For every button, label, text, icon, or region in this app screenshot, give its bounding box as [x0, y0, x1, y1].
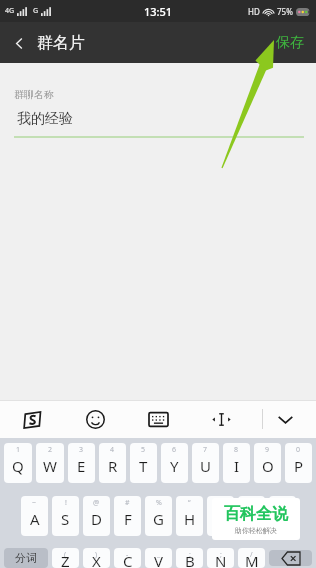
button[interactable]: 9 [254, 443, 281, 483]
button[interactable]: “ [176, 496, 203, 536]
staticText: ) [95, 550, 98, 560]
staticText: 保存 [276, 34, 304, 52]
button[interactable]: % [145, 496, 172, 536]
button[interactable]: 0 [285, 443, 312, 483]
staticText: N [215, 551, 227, 568]
button[interactable]: 2 [36, 443, 64, 483]
staticText: B [185, 551, 195, 568]
button[interactable]: 5 [130, 443, 157, 483]
staticText: 7 [203, 445, 208, 455]
staticText: H [184, 509, 196, 529]
staticText: C [123, 551, 133, 568]
staticText: P [294, 456, 304, 476]
staticText: ? [281, 498, 285, 508]
staticText: S [61, 509, 70, 529]
staticText: 百科全说 [224, 504, 288, 524]
staticText: E [77, 456, 86, 476]
button[interactable]: _ [145, 548, 172, 568]
button[interactable]: ) [83, 548, 110, 568]
staticText: 4G [5, 6, 15, 16]
button[interactable]: / [238, 548, 265, 568]
button[interactable]: Emoji [64, 400, 127, 438]
staticText: 5 [141, 445, 146, 455]
staticText: I [234, 456, 240, 476]
button[interactable]: ” [207, 496, 234, 536]
staticText: ! [65, 498, 67, 508]
staticText: 6 [172, 445, 177, 455]
staticText: - [126, 550, 129, 560]
staticText: G [33, 6, 39, 16]
button[interactable]: ; [207, 548, 234, 568]
staticText: ; [220, 550, 222, 560]
staticText: 2 [48, 445, 53, 455]
button[interactable]: Keyboard layout [127, 400, 190, 438]
staticText: G [153, 509, 164, 529]
staticText: “ [188, 498, 191, 508]
button[interactable]: # [114, 496, 141, 536]
button[interactable]: Move cursor [190, 400, 253, 438]
staticText: Z [61, 551, 70, 568]
staticText: 分词 [15, 551, 37, 565]
staticText: T [139, 456, 148, 476]
staticText: R [108, 456, 118, 476]
staticText: Q [12, 456, 24, 476]
staticText: 群名片 [37, 33, 85, 53]
staticText: * [250, 498, 254, 508]
button[interactable]: 百科全说 [212, 498, 300, 540]
staticText: U [200, 456, 211, 476]
button[interactable]: 3 [68, 443, 95, 483]
staticText: 13:51 [144, 4, 173, 19]
button[interactable]: - [114, 548, 141, 568]
staticText: 9 [265, 445, 270, 455]
staticText: % [156, 498, 162, 508]
staticText: ( [64, 550, 67, 560]
staticText: HD [248, 6, 260, 17]
staticText: A [30, 509, 40, 529]
button[interactable]: 1 [4, 443, 32, 483]
button[interactable]: 6 [161, 443, 188, 483]
staticText: W [43, 456, 57, 476]
staticText: D [91, 509, 102, 529]
button[interactable]: Hide keyboard [263, 400, 307, 438]
staticText: ~ [32, 498, 37, 508]
staticText: F [124, 509, 132, 529]
button[interactable]: 我的经验 [14, 110, 304, 128]
staticText: : [189, 550, 191, 560]
button[interactable]: 7 [192, 443, 219, 483]
staticText: L [279, 509, 287, 529]
button[interactable]: 保存 [270, 28, 310, 58]
staticText: 我的经验 [17, 110, 73, 128]
button[interactable]: 分词 [4, 548, 48, 568]
button[interactable]: Back [0, 24, 38, 62]
button[interactable]: * [238, 496, 265, 536]
button[interactable]: Delete [269, 550, 312, 566]
button[interactable]: : [176, 548, 203, 568]
staticText: 75% [277, 6, 293, 17]
staticText: 3 [79, 445, 84, 455]
button[interactable]: ? [269, 496, 296, 536]
button[interactable]: ! [52, 496, 79, 536]
staticText: 0 [296, 445, 301, 455]
staticText: @ [93, 498, 100, 508]
staticText: _ [157, 550, 161, 560]
staticText: M [245, 551, 259, 568]
staticText: / [250, 550, 253, 560]
staticText: 1 [16, 445, 21, 455]
button[interactable]: 8 [223, 443, 250, 483]
button[interactable]: 4 [99, 443, 126, 483]
staticText: O [262, 456, 274, 476]
staticText: X [92, 551, 101, 568]
staticText: # [125, 498, 130, 508]
button[interactable]: Sogou input [0, 400, 64, 438]
button[interactable]: ~ [21, 496, 48, 536]
staticText: 助你轻松解决 [235, 526, 277, 535]
button[interactable]: ( [52, 548, 79, 568]
staticText: 4 [110, 445, 115, 455]
staticText: Y [170, 456, 179, 476]
button[interactable]: @ [83, 496, 110, 536]
staticText: 群聊名称 [14, 88, 54, 101]
staticText: K [247, 509, 257, 529]
staticText: 8 [234, 445, 239, 455]
